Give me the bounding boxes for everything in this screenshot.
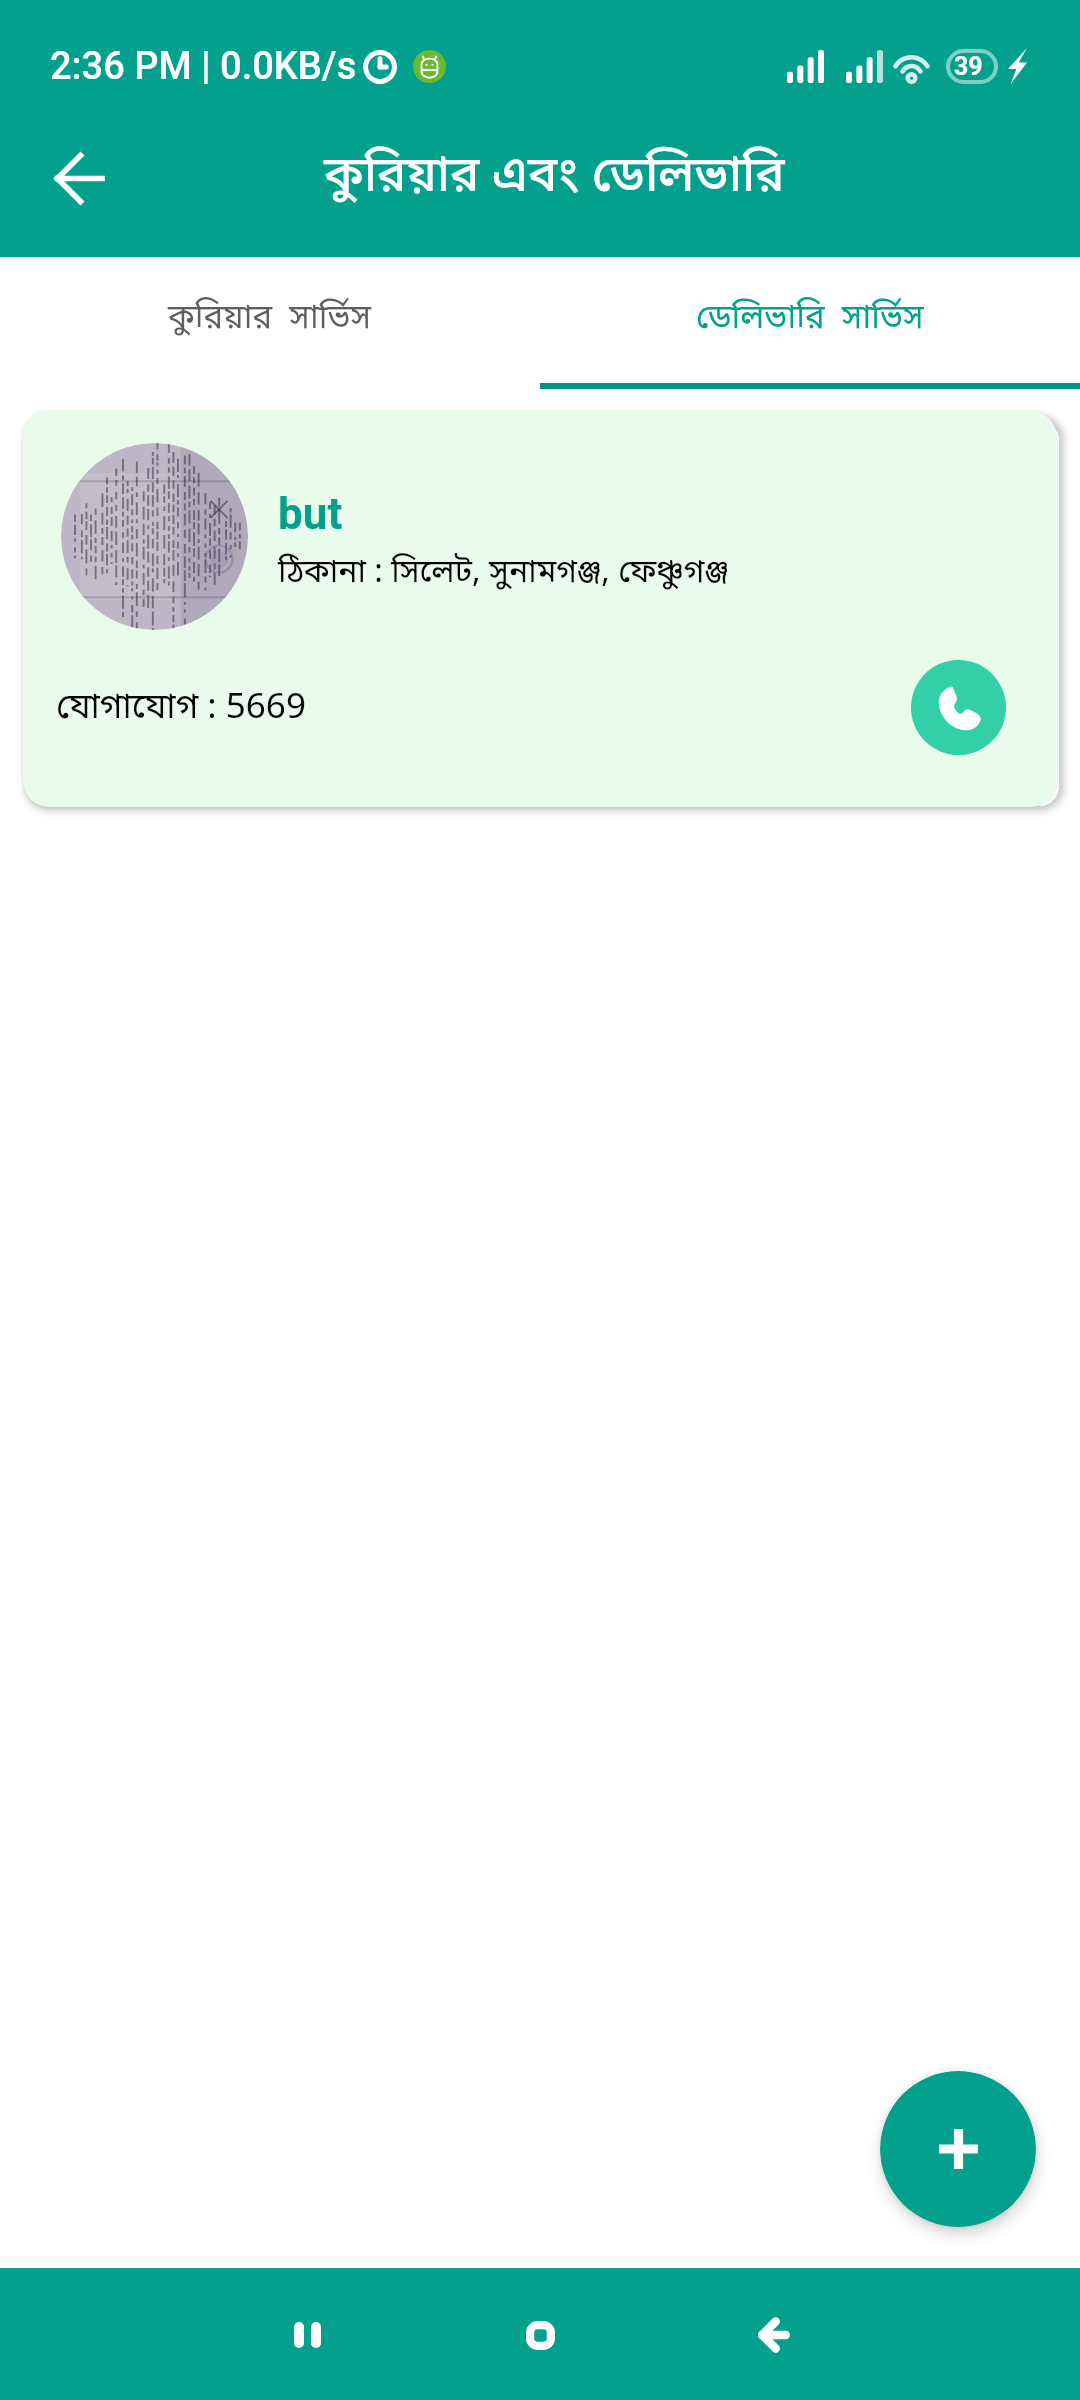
staticText: ডেলিভারি সার্ভিস (696, 298, 924, 342)
staticText: 2:36 PM | 0.0KB/s (50, 44, 357, 89)
staticText: যোগাযোগ : 5669 (56, 686, 306, 732)
staticText: কুরিয়ার এবং ডেলিভারি (324, 146, 785, 211)
button[interactable]: Call (911, 660, 1006, 755)
button[interactable]: Recent apps (257, 2285, 357, 2385)
button[interactable]: Add (880, 2071, 1036, 2227)
staticText: কুরিয়ার সার্ভিস (168, 298, 372, 342)
button[interactable]: but (23, 411, 1057, 807)
staticText: ঠিকানা : সিলেট, সুনামগঞ্জ, ফেঞ্চুগঞ্জ (278, 553, 729, 595)
button[interactable]: Back (29, 128, 129, 228)
staticText: but (278, 488, 343, 540)
button[interactable]: Back (724, 2285, 824, 2385)
button[interactable]: কুরিয়ার সার্ভিস (0, 257, 540, 383)
button[interactable]: Home (490, 2285, 590, 2385)
button[interactable]: ডেলিভারি সার্ভিস (540, 257, 1080, 383)
staticText: 39 (954, 52, 983, 81)
